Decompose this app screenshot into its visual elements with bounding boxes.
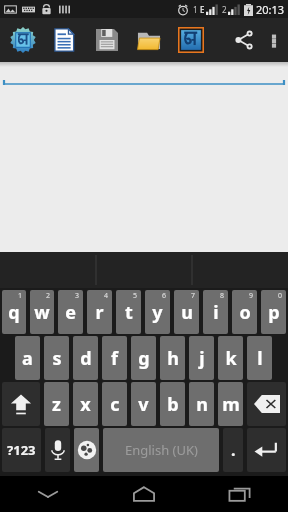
staticText: t — [125, 300, 133, 325]
button[interactable]: d — [73, 336, 98, 380]
button[interactable]: c — [102, 382, 127, 426]
staticText: 7 — [191, 291, 196, 301]
button[interactable]: New document — [44, 18, 86, 62]
staticText: i — [213, 300, 219, 325]
staticText: g — [138, 346, 150, 371]
staticText: 3 — [75, 291, 80, 301]
button[interactable]: Period — [223, 428, 243, 472]
button[interactable]: r — [87, 290, 112, 334]
button[interactable]: g — [131, 336, 156, 380]
button[interactable]: x — [73, 382, 98, 426]
staticText: a — [22, 346, 33, 371]
button[interactable]: i — [203, 290, 228, 334]
button[interactable]: l — [247, 336, 272, 380]
button[interactable]: t — [116, 290, 141, 334]
button[interactable]: q — [2, 290, 26, 334]
button[interactable]: Save — [86, 18, 128, 62]
button[interactable]: Open folder — [128, 18, 170, 62]
staticText: z — [52, 392, 61, 417]
button[interactable]: u — [174, 290, 199, 334]
staticText: y — [152, 300, 163, 325]
button[interactable]: k — [218, 336, 243, 380]
button[interactable]: Share — [226, 18, 262, 62]
staticText: 20:13 — [256, 2, 285, 17]
button[interactable]: f — [102, 336, 127, 380]
staticText: j — [199, 346, 205, 371]
button[interactable]: j — [189, 336, 214, 380]
staticText: 5 — [133, 291, 138, 301]
button[interactable]: z — [44, 382, 69, 426]
button[interactable]: m — [218, 382, 243, 426]
staticText: d — [80, 346, 92, 371]
button[interactable]: v — [131, 382, 156, 426]
button[interactable]: Voice input — [45, 428, 70, 472]
staticText: k — [225, 346, 237, 371]
button[interactable]: Bengali keyboard — [170, 18, 212, 62]
staticText: l — [257, 346, 263, 371]
staticText: b — [167, 392, 179, 417]
button[interactable]: n — [189, 382, 214, 426]
button[interactable]: Home — [96, 476, 192, 512]
button[interactable]: More options — [262, 18, 286, 62]
staticText: e — [65, 300, 76, 325]
staticText: 8 — [220, 291, 225, 301]
button[interactable]: b — [160, 382, 185, 426]
button[interactable]: Enter — [247, 428, 286, 472]
button[interactable]: App logo — [2, 18, 44, 62]
button[interactable]: Recent apps — [192, 476, 288, 512]
staticText: 9 — [249, 291, 254, 301]
button[interactable]: s — [44, 336, 69, 380]
button[interactable]: Shift — [2, 382, 40, 426]
button[interactable]: English (UK) — [103, 428, 219, 472]
staticText: 2 — [222, 4, 227, 15]
button[interactable]: y — [145, 290, 170, 334]
button[interactable]: Backspace — [247, 382, 286, 426]
staticText: h — [167, 346, 179, 371]
button[interactable]: o — [232, 290, 257, 334]
staticText: c — [110, 392, 120, 417]
button[interactable]: Symbols — [2, 428, 41, 472]
staticText: o — [239, 300, 251, 325]
staticText: w — [34, 300, 50, 325]
staticText: E — [200, 4, 205, 15]
staticText: f — [111, 346, 118, 371]
staticText: m — [222, 392, 240, 417]
staticText: ?123 — [7, 441, 36, 459]
staticText: 0 — [278, 291, 283, 301]
button[interactable]: a — [15, 336, 40, 380]
button[interactable]: p — [261, 290, 286, 334]
staticText: 1 — [193, 4, 198, 15]
staticText: s — [52, 346, 62, 371]
button[interactable]: Hide keyboard — [0, 476, 96, 512]
button[interactable]: h — [160, 336, 185, 380]
staticText: q — [8, 300, 20, 325]
button[interactable]: Change language — [74, 428, 99, 472]
staticText: n — [196, 392, 208, 417]
staticText: . — [231, 439, 236, 461]
staticText: u — [181, 300, 193, 325]
staticText: x — [80, 392, 91, 417]
staticText: v — [138, 392, 149, 417]
staticText: r — [95, 300, 104, 325]
staticText: 1 — [18, 291, 23, 301]
staticText: p — [268, 300, 280, 325]
staticText: 2 — [46, 291, 51, 301]
staticText: English (UK) — [125, 441, 198, 459]
staticText: 6 — [162, 291, 167, 301]
button[interactable]: e — [58, 290, 83, 334]
staticText: 4 — [104, 291, 109, 301]
button[interactable]: w — [30, 290, 54, 334]
